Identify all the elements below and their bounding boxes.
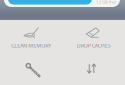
button[interactable]: Swap [62,65,125,75]
staticText: DROP CACHES [77,42,111,49]
button[interactable]: Tools [0,62,62,77]
staticText: CLEAN MEMORY [11,42,51,49]
button[interactable]: DROP CACHES [62,27,125,49]
staticText: 1.2 GB free [96,0,116,5]
button[interactable]: CLEAN MEMORY [0,27,62,49]
